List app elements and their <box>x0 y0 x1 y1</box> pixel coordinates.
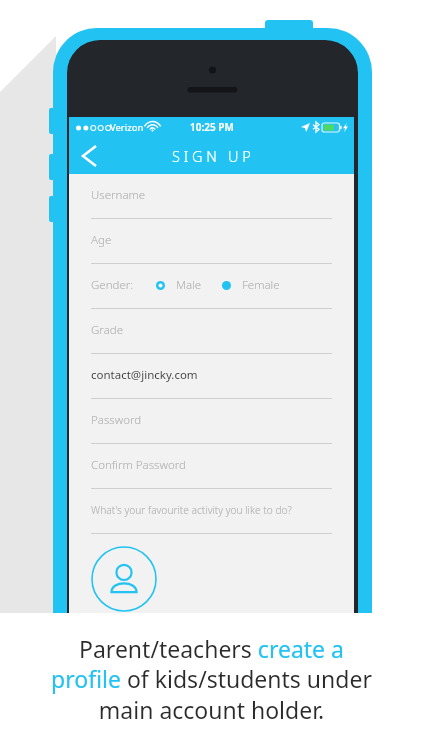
staticText: S I G N U P <box>172 146 251 166</box>
button[interactable]: Female <box>222 277 280 293</box>
staticText: Parent/teachers create a profile of kids… <box>51 633 372 726</box>
button[interactable]: Back <box>69 137 109 174</box>
button[interactable]: Username <box>69 174 354 219</box>
staticText: Username <box>91 187 146 203</box>
staticText: Confirm Password <box>91 457 186 473</box>
staticText: Female <box>242 277 280 293</box>
button[interactable]: Grade <box>69 309 354 354</box>
button[interactable]: Confirm Password <box>69 444 354 489</box>
staticText: Male <box>176 277 202 293</box>
button[interactable]: Add profile photo <box>91 546 157 612</box>
staticText: Age <box>91 232 112 248</box>
button[interactable]: Age <box>69 219 354 264</box>
staticText: Gender: <box>91 277 134 293</box>
button[interactable]: contact@jincky.com <box>69 354 354 399</box>
staticText: What's your favourite activity you like … <box>91 503 292 517</box>
staticText: contact@jincky.com <box>91 367 198 383</box>
button[interactable]: Password <box>69 399 354 444</box>
button[interactable]: Male <box>156 277 202 293</box>
staticText: Password <box>91 412 142 428</box>
staticText: Grade <box>91 322 124 338</box>
staticText: Verizon <box>110 121 144 134</box>
button[interactable]: What's your favourite activity you like … <box>69 489 354 534</box>
staticText: 10:25 PM <box>190 120 234 134</box>
